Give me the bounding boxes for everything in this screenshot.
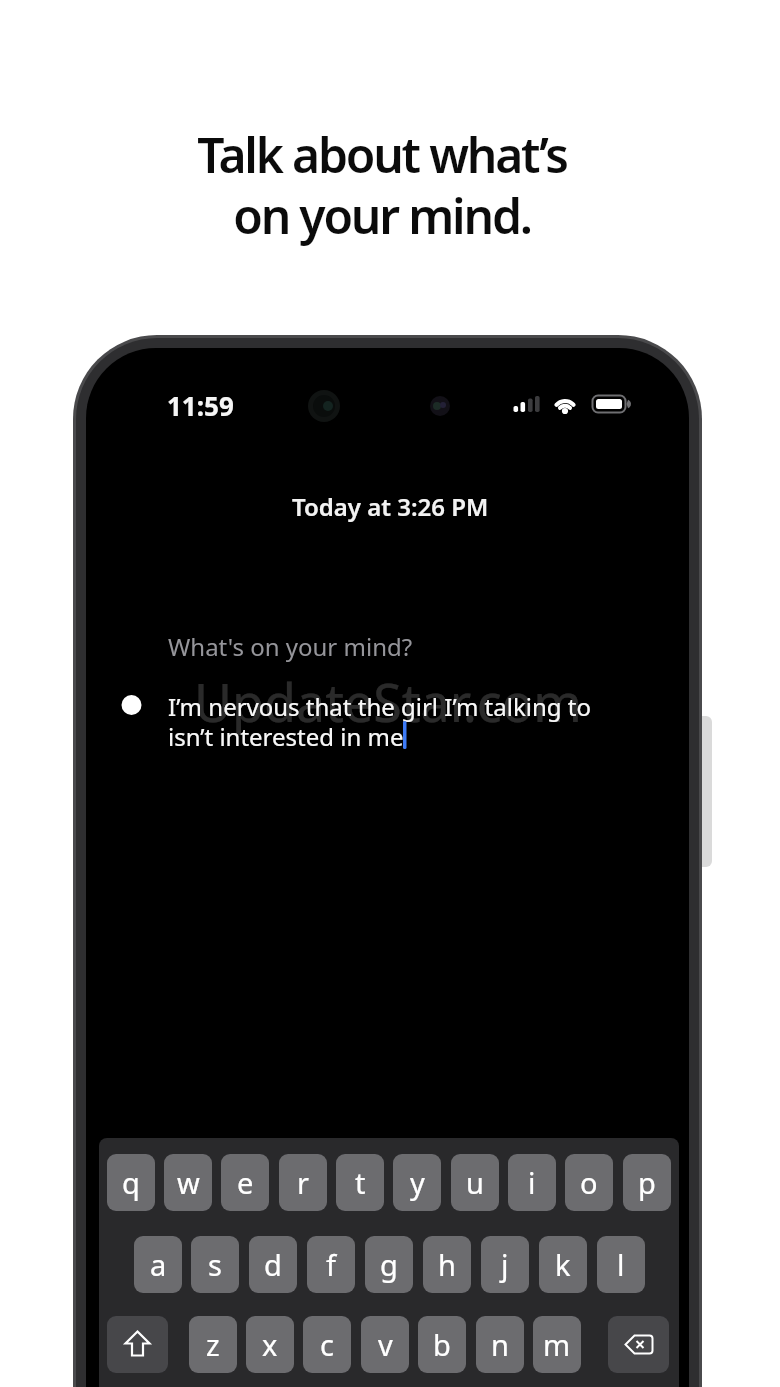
button[interactable]: q [107,1154,155,1211]
button[interactable]: d [249,1236,297,1293]
staticText: 11:59 [167,388,234,423]
button[interactable]: z [189,1316,237,1373]
button[interactable]: c [303,1316,351,1373]
button[interactable]: t [336,1154,384,1211]
staticText: n [491,1325,509,1364]
staticText: p [638,1163,656,1202]
button[interactable] [608,1316,669,1373]
button[interactable]: v [361,1316,409,1373]
staticText: q [122,1163,140,1202]
staticText: g [380,1245,398,1284]
staticText: w [177,1163,200,1202]
button[interactable]: n [476,1316,524,1373]
button[interactable]: o [565,1154,613,1211]
staticText: Talk about what’s on your mind. [0,122,772,248]
button[interactable]: f [307,1236,355,1293]
staticText: o [580,1163,598,1202]
staticText: j [501,1245,509,1284]
staticText: v [378,1325,393,1364]
staticText: s [208,1245,222,1284]
staticText: m [543,1325,571,1364]
staticText: Today at 3:26 PM [292,490,489,523]
staticText: f [326,1245,336,1284]
button[interactable]: e [221,1154,269,1211]
button[interactable]: b [418,1316,466,1373]
staticText: h [438,1245,456,1284]
staticText: r [297,1163,309,1202]
button[interactable]: a [134,1236,182,1293]
button[interactable]: u [451,1154,499,1211]
button[interactable]: p [623,1154,671,1211]
button[interactable]: m [533,1316,581,1373]
staticText: k [555,1245,571,1284]
button[interactable]: I’m nervous that the girl I’m talking to… [168,690,648,752]
staticText: t [355,1163,366,1202]
staticText: a [150,1245,167,1284]
staticText: i [528,1163,536,1202]
button[interactable]: h [423,1236,471,1293]
staticText: c [320,1325,334,1364]
staticText: l [617,1245,625,1284]
button[interactable]: s [191,1236,239,1293]
button[interactable]: i [508,1154,556,1211]
staticText: x [262,1325,278,1364]
staticText: z [206,1325,220,1364]
button[interactable]: y [393,1154,441,1211]
button[interactable] [107,1316,168,1373]
button[interactable]: x [246,1316,294,1373]
staticText: u [466,1163,484,1202]
button[interactable]: What's on your mind? [168,628,588,664]
button[interactable]: l [597,1236,645,1293]
button[interactable]: w [164,1154,212,1211]
staticText: What's on your mind? [168,630,413,663]
staticText: b [433,1325,451,1364]
button[interactable]: j [481,1236,529,1293]
staticText: I’m nervous that the girl I’m talking to… [168,690,591,752]
staticText: UpdateStar.com [194,666,582,736]
staticText: d [264,1245,282,1284]
button[interactable]: g [365,1236,413,1293]
staticText: e [237,1163,254,1202]
button[interactable]: r [279,1154,327,1211]
staticText: y [410,1163,425,1202]
button[interactable]: k [539,1236,587,1293]
